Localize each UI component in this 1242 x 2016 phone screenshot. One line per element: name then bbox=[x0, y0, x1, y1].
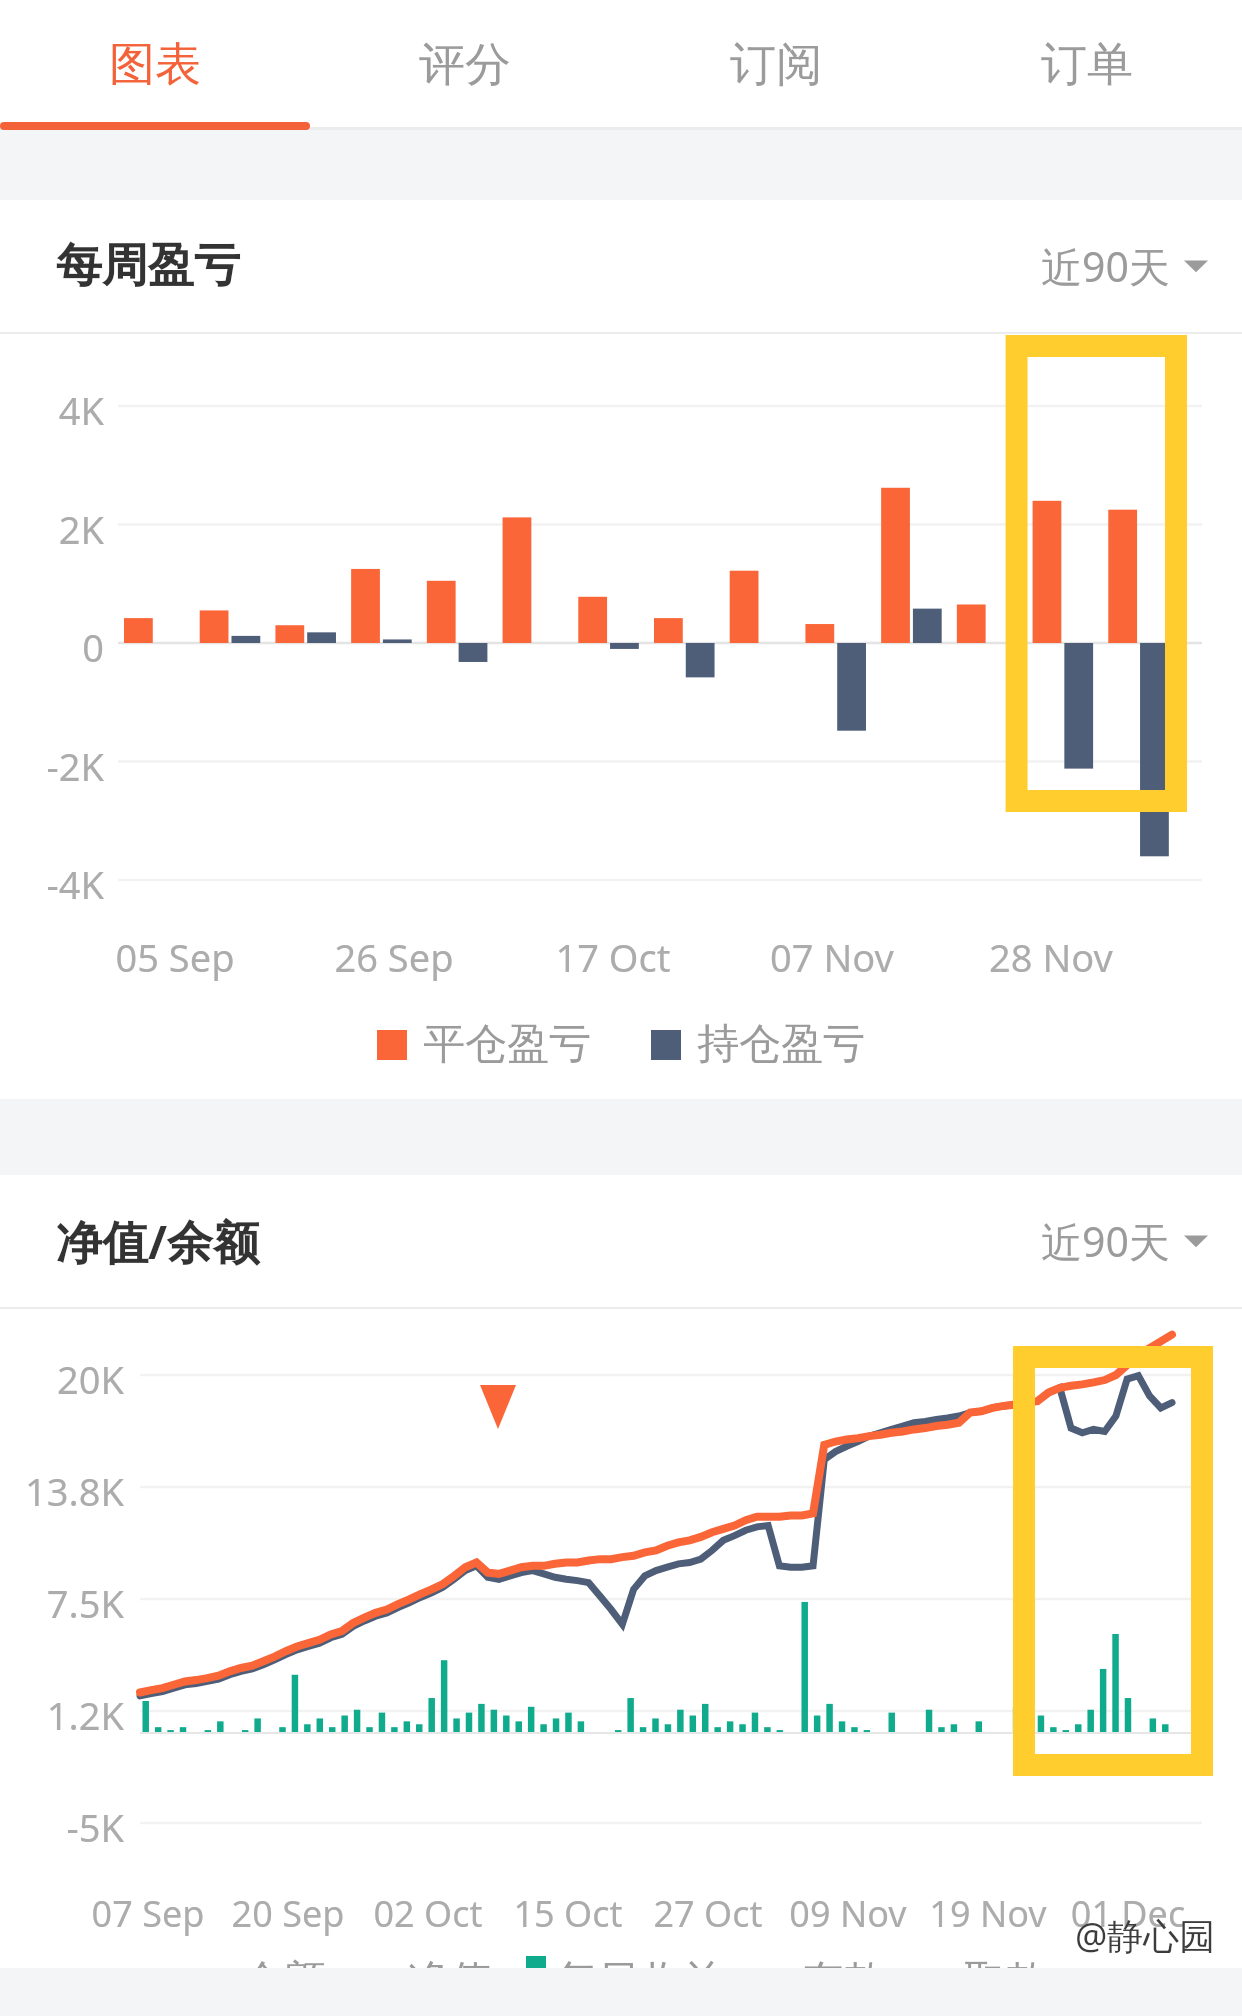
staticText: 20 Sep bbox=[208, 1889, 368, 1938]
staticText: -5K bbox=[0, 1801, 124, 1853]
staticText: 存款 bbox=[802, 1955, 886, 2008]
button[interactable]: 持仓盈亏 bbox=[651, 1018, 865, 1071]
staticText: 20K bbox=[0, 1353, 124, 1405]
staticText: 每日收益 bbox=[556, 1955, 724, 2008]
staticText: 19 Nov bbox=[908, 1889, 1068, 1938]
staticText: 4K bbox=[0, 384, 104, 436]
staticText: 2K bbox=[0, 503, 104, 555]
staticText: -4K bbox=[0, 858, 104, 910]
staticText: 近90天 bbox=[1041, 1213, 1170, 1269]
staticText: 0 bbox=[0, 621, 104, 673]
staticText: 09 Nov bbox=[768, 1889, 928, 1938]
staticText: 28 Nov bbox=[966, 931, 1136, 983]
button[interactable]: 余额 bbox=[194, 1955, 326, 2008]
staticText: 01 Dec bbox=[1048, 1889, 1208, 1938]
staticText: 订阅 bbox=[730, 36, 822, 94]
staticText: 15 Oct bbox=[488, 1889, 648, 1938]
staticText: 订单 bbox=[1041, 36, 1133, 94]
staticText: 取款 bbox=[964, 1955, 1048, 2008]
button[interactable]: 评分 bbox=[310, 0, 620, 130]
staticText: 7.5K bbox=[0, 1577, 124, 1629]
staticText: 26 Sep bbox=[309, 931, 479, 983]
staticText: 07 Sep bbox=[68, 1889, 228, 1938]
staticText: 余额 bbox=[242, 1955, 326, 2008]
button[interactable]: 存款 bbox=[758, 1955, 886, 2008]
staticText: 07 Nov bbox=[747, 931, 917, 983]
button[interactable]: 每日收益 bbox=[526, 1955, 724, 2008]
staticText: 05 Sep bbox=[90, 931, 260, 983]
button[interactable]: 订单 bbox=[931, 0, 1242, 130]
staticText: @静心园 bbox=[1075, 1911, 1216, 1960]
button[interactable]: 取款 bbox=[920, 1955, 1048, 2008]
staticText: 02 Oct bbox=[348, 1889, 508, 1938]
staticText: 持仓盈亏 bbox=[697, 1018, 865, 1071]
staticText: -2K bbox=[0, 740, 104, 792]
button[interactable]: 近90天 bbox=[1041, 1213, 1242, 1269]
button[interactable]: 订阅 bbox=[620, 0, 931, 130]
staticText: 27 Oct bbox=[628, 1889, 788, 1938]
button[interactable]: 近90天 bbox=[1041, 238, 1242, 294]
staticText: 评分 bbox=[419, 36, 511, 94]
staticText: 1.2K bbox=[0, 1689, 124, 1741]
staticText: 近90天 bbox=[1041, 238, 1170, 294]
staticText: 净值/余额 bbox=[56, 1210, 260, 1273]
button[interactable]: 图表 bbox=[0, 0, 310, 130]
button[interactable]: 平仓盈亏 bbox=[377, 1018, 591, 1071]
staticText: 13.8K bbox=[0, 1465, 124, 1517]
staticText: 每周盈亏 bbox=[56, 237, 240, 295]
staticText: 图表 bbox=[109, 36, 201, 94]
staticText: 净值 bbox=[408, 1955, 492, 2008]
staticText: 平仓盈亏 bbox=[423, 1018, 591, 1071]
staticText: 17 Oct bbox=[528, 931, 698, 983]
button[interactable]: 净值 bbox=[360, 1955, 492, 2008]
